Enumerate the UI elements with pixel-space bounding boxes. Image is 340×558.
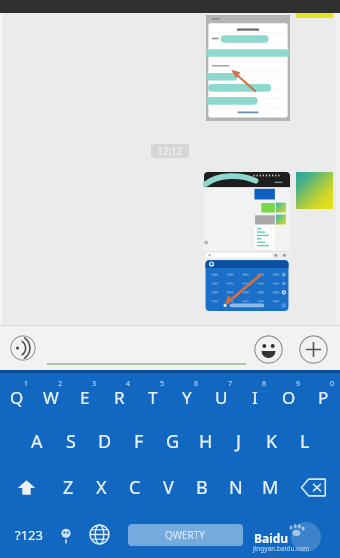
button[interactable]: E (68, 373, 102, 418)
staticText: M (262, 475, 279, 500)
staticText: H (199, 429, 213, 454)
button[interactable]: P (306, 373, 340, 418)
staticText: QWERTY (165, 528, 206, 542)
button[interactable]: H (189, 418, 222, 464)
button[interactable]: Q (0, 373, 34, 418)
button[interactable]: O (272, 373, 306, 418)
staticText: ?123 (15, 526, 43, 544)
staticText: N (229, 475, 243, 500)
button[interactable]: V (151, 464, 185, 511)
staticText: 7 (228, 379, 233, 389)
staticText: 6 (194, 379, 199, 389)
staticText: 0 (330, 379, 335, 389)
staticText: C (129, 475, 141, 500)
button[interactable]: T (136, 373, 170, 418)
staticText: I (252, 386, 258, 409)
staticText: T (148, 386, 158, 409)
staticText: 12:12 (157, 144, 183, 158)
staticText: Y (182, 386, 192, 409)
button[interactable]: C (118, 464, 151, 511)
button[interactable]: Emoji keyboard (58, 511, 74, 558)
button[interactable]: N (219, 464, 253, 511)
staticText: 1 (24, 379, 29, 389)
staticText: G (166, 429, 180, 454)
staticText: J (236, 429, 241, 454)
staticText: 9 (296, 379, 301, 389)
button[interactable]: Backspace (287, 464, 340, 511)
staticText: S (66, 429, 76, 454)
button[interactable]: J (222, 418, 255, 464)
staticText: R (114, 386, 125, 409)
button[interactable]: Emoji (254, 335, 283, 364)
staticText: 3 (92, 379, 97, 389)
staticText: D (98, 429, 112, 454)
staticText: Q (10, 386, 24, 409)
staticText: jingyan.baidu.com (253, 544, 310, 553)
button[interactable]: G (156, 418, 189, 464)
button[interactable]: W (34, 373, 68, 418)
staticText: 8 (262, 379, 267, 389)
button[interactable]: QWERTY (128, 524, 243, 546)
staticText: K (266, 429, 278, 454)
button[interactable]: A (20, 418, 54, 464)
button[interactable]: X (85, 464, 118, 511)
button[interactable]: Z (52, 464, 85, 511)
button[interactable]: U (204, 373, 238, 418)
staticText: 4 (126, 379, 131, 389)
button[interactable]: R (102, 373, 136, 418)
staticText: 2 (58, 379, 63, 389)
staticText: Baidu (254, 530, 289, 546)
staticText: P (318, 386, 329, 409)
button[interactable]: Shift (0, 464, 52, 511)
button[interactable]: B (185, 464, 219, 511)
staticText: U (215, 386, 228, 409)
staticText: E (80, 386, 90, 409)
button[interactable]: M (253, 464, 287, 511)
staticText: V (163, 475, 174, 500)
button[interactable]: I (238, 373, 272, 418)
button[interactable]: Y (170, 373, 204, 418)
staticText: F (134, 429, 144, 454)
staticText: B (196, 475, 208, 500)
staticText: Z (63, 475, 74, 500)
button[interactable]: Switch language (74, 511, 124, 558)
button[interactable]: S (54, 418, 88, 464)
staticText: 5 (160, 379, 165, 389)
button[interactable]: ?123 (0, 511, 58, 558)
button[interactable]: K (255, 418, 288, 464)
staticText: A (31, 429, 43, 454)
staticText: O (282, 386, 296, 409)
button[interactable]: More options (299, 335, 328, 364)
button[interactable]: D (88, 418, 122, 464)
button[interactable]: L (288, 418, 321, 464)
button[interactable]: Voice input (10, 335, 36, 361)
button[interactable]: F (122, 418, 156, 464)
staticText: X (96, 475, 107, 500)
staticText: L (300, 429, 310, 454)
button[interactable] (47, 333, 246, 365)
staticText: W (43, 386, 59, 409)
